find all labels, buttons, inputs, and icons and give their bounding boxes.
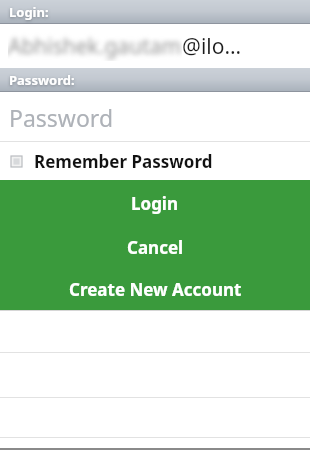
staticText: Remember Password	[34, 150, 213, 173]
button[interactable]: Abhishek.gautam	[0, 24, 310, 68]
button[interactable]: Cancel	[0, 226, 310, 268]
button[interactable]: Login	[0, 180, 310, 226]
button[interactable]: Create New Account	[0, 268, 310, 310]
staticText: Abhishek.gautam	[8, 32, 182, 61]
staticText: Login	[131, 192, 179, 215]
staticText: Create New Account	[69, 278, 242, 301]
staticText: @ilo…	[182, 32, 242, 61]
staticText: Cancel	[127, 236, 184, 259]
button[interactable]: Remember Password	[0, 142, 310, 180]
staticText: Password:	[9, 71, 75, 89]
button[interactable]: Password	[0, 92, 310, 142]
staticText: Login:	[9, 3, 49, 21]
staticText: Password	[9, 102, 114, 133]
